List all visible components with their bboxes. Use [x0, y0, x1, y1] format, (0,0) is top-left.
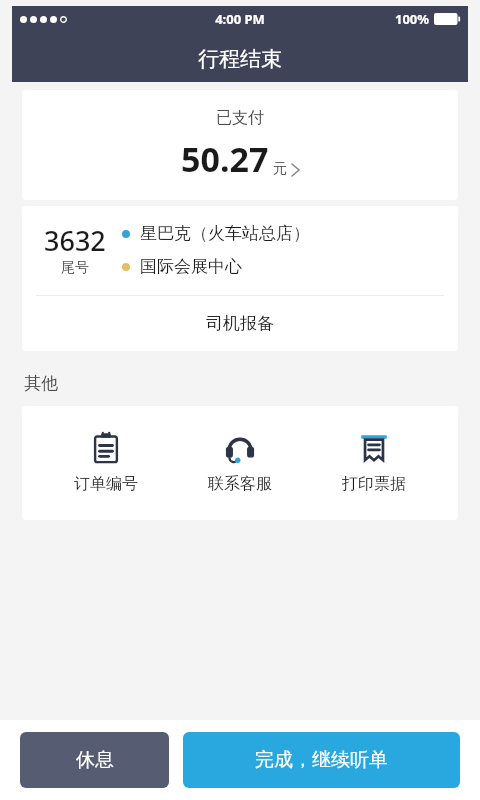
button[interactable]: 休息: [20, 732, 169, 788]
button[interactable]: Contact support: [190, 428, 290, 498]
staticText: 国际会展中心: [140, 256, 242, 277]
button[interactable]: 3632: [22, 206, 458, 295]
staticText: 休息: [76, 748, 114, 772]
staticText: 50.27: [181, 136, 269, 182]
staticText: 订单编号: [74, 474, 138, 494]
button[interactable]: Order number: [56, 428, 156, 498]
staticText: 星巴克（火车站总店）: [140, 223, 310, 244]
staticText: 完成，继续听单: [255, 748, 388, 772]
staticText: 其他: [24, 373, 58, 394]
staticText: 3632: [44, 222, 106, 259]
staticText: 行程结束: [198, 46, 282, 72]
button[interactable]: Print receipt: [324, 428, 424, 498]
button[interactable]: 司机报备: [22, 296, 458, 351]
button[interactable]: 已支付: [22, 90, 458, 200]
staticText: 已支付: [216, 108, 264, 128]
staticText: 元: [273, 160, 287, 178]
staticText: 司机报备: [206, 313, 274, 334]
staticText: 打印票据: [342, 474, 406, 494]
staticText: 4:00 PM: [215, 10, 265, 28]
staticText: 联系客服: [208, 474, 272, 494]
staticText: 尾号: [61, 259, 89, 277]
staticText: 100%: [395, 10, 430, 28]
button[interactable]: 完成，继续听单: [183, 732, 460, 788]
